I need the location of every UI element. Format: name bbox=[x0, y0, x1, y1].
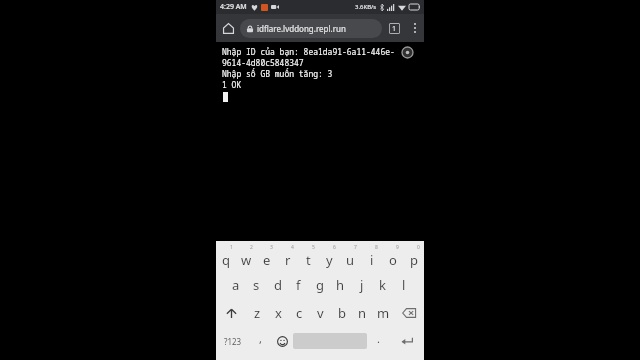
staticText: o bbox=[389, 251, 397, 269]
staticText: idflare.lvddong.repl.run bbox=[257, 23, 346, 34]
button[interactable]: c bbox=[289, 299, 310, 327]
staticText: x bbox=[275, 304, 282, 322]
staticText: v bbox=[317, 304, 324, 322]
staticText: 9 bbox=[396, 244, 399, 251]
staticText: z bbox=[254, 304, 261, 322]
button[interactable]: 9 bbox=[382, 245, 403, 271]
button[interactable]: k bbox=[372, 271, 393, 299]
button[interactable]: j bbox=[351, 271, 372, 299]
staticText: 1 OK bbox=[222, 79, 242, 90]
staticText: h bbox=[336, 276, 345, 294]
button[interactable]: a bbox=[226, 271, 246, 299]
staticText: i bbox=[370, 251, 374, 269]
staticText: 0 bbox=[417, 244, 420, 251]
button[interactable]: Enter bbox=[389, 327, 424, 355]
staticText: Nhập số GB muốn tăng: 3 bbox=[222, 68, 333, 79]
staticText: y bbox=[326, 251, 333, 269]
staticText: 1 bbox=[230, 244, 233, 251]
staticText: u bbox=[346, 251, 355, 269]
staticText: q bbox=[222, 251, 230, 269]
button[interactable]: Home bbox=[216, 14, 240, 42]
staticText: f bbox=[296, 276, 301, 294]
staticText: 3.6KB/s bbox=[355, 3, 377, 11]
button[interactable]: 4 bbox=[277, 245, 298, 271]
staticText: j bbox=[360, 276, 364, 294]
staticText: 6 bbox=[333, 244, 336, 251]
button[interactable]: 1 bbox=[216, 245, 236, 271]
staticText: n bbox=[358, 304, 367, 322]
button[interactable]: Scroll to top bbox=[402, 47, 413, 58]
staticText: l bbox=[402, 276, 406, 294]
button[interactable]: 5 bbox=[298, 245, 319, 271]
button[interactable]: g bbox=[309, 271, 330, 299]
button[interactable]: 6 bbox=[319, 245, 340, 271]
button[interactable]: m bbox=[373, 299, 394, 327]
button[interactable]: z bbox=[247, 299, 268, 327]
staticText: , bbox=[259, 331, 262, 346]
button[interactable]: 0 bbox=[403, 245, 424, 271]
staticText: Nhập ID của bạn: 8ea1da91-6a11-446e- bbox=[222, 46, 395, 57]
button[interactable]: More options bbox=[406, 14, 424, 42]
button[interactable]: Emoji bbox=[271, 327, 293, 355]
staticText: 3 bbox=[270, 244, 273, 251]
button[interactable]: 3 bbox=[256, 245, 277, 271]
staticText: g bbox=[316, 276, 324, 294]
staticText: r bbox=[285, 251, 291, 269]
button[interactable]: h bbox=[330, 271, 351, 299]
button[interactable]: . bbox=[367, 327, 389, 355]
button[interactable]: Backspace bbox=[394, 299, 424, 327]
staticText: b bbox=[338, 304, 346, 322]
staticText: 4 bbox=[291, 244, 294, 251]
staticText: 2 bbox=[250, 244, 253, 251]
staticText: m bbox=[377, 304, 390, 322]
button[interactable]: v bbox=[310, 299, 331, 327]
button[interactable]: s bbox=[246, 271, 267, 299]
button[interactable]: 8 bbox=[361, 245, 382, 271]
staticText: 9614-4d80c5848347 bbox=[222, 57, 304, 68]
staticText: c bbox=[296, 304, 303, 322]
button[interactable]: f bbox=[288, 271, 309, 299]
staticText: k bbox=[379, 276, 386, 294]
staticText: . bbox=[377, 331, 380, 346]
button[interactable]: 7 bbox=[340, 245, 361, 271]
button[interactable]: Tabs, 1 open bbox=[382, 14, 406, 42]
staticText: ?123 bbox=[224, 336, 242, 347]
button[interactable]: n bbox=[352, 299, 373, 327]
button[interactable]: , bbox=[250, 327, 271, 355]
staticText: a bbox=[232, 276, 240, 294]
staticText: 7 bbox=[354, 244, 357, 251]
button[interactable]: Shift bbox=[216, 299, 247, 327]
staticText: d bbox=[274, 276, 282, 294]
staticText: 5 bbox=[312, 244, 315, 251]
button[interactable]: x bbox=[268, 299, 289, 327]
button[interactable]: idflare.lvddong.repl.run bbox=[240, 19, 382, 38]
button[interactable]: 2 bbox=[236, 245, 256, 271]
staticText: 4:29 AM bbox=[220, 2, 247, 12]
staticText: 8 bbox=[375, 244, 378, 251]
button[interactable]: b bbox=[331, 299, 352, 327]
button[interactable]: ?123 bbox=[216, 327, 250, 355]
staticText: e bbox=[263, 251, 271, 269]
staticText: w bbox=[241, 251, 252, 269]
button[interactable]: d bbox=[267, 271, 288, 299]
staticText: t bbox=[306, 251, 311, 269]
button[interactable]: l bbox=[393, 271, 414, 299]
staticText: 1 bbox=[392, 24, 397, 34]
staticText: p bbox=[410, 251, 418, 269]
staticText: s bbox=[253, 276, 260, 294]
